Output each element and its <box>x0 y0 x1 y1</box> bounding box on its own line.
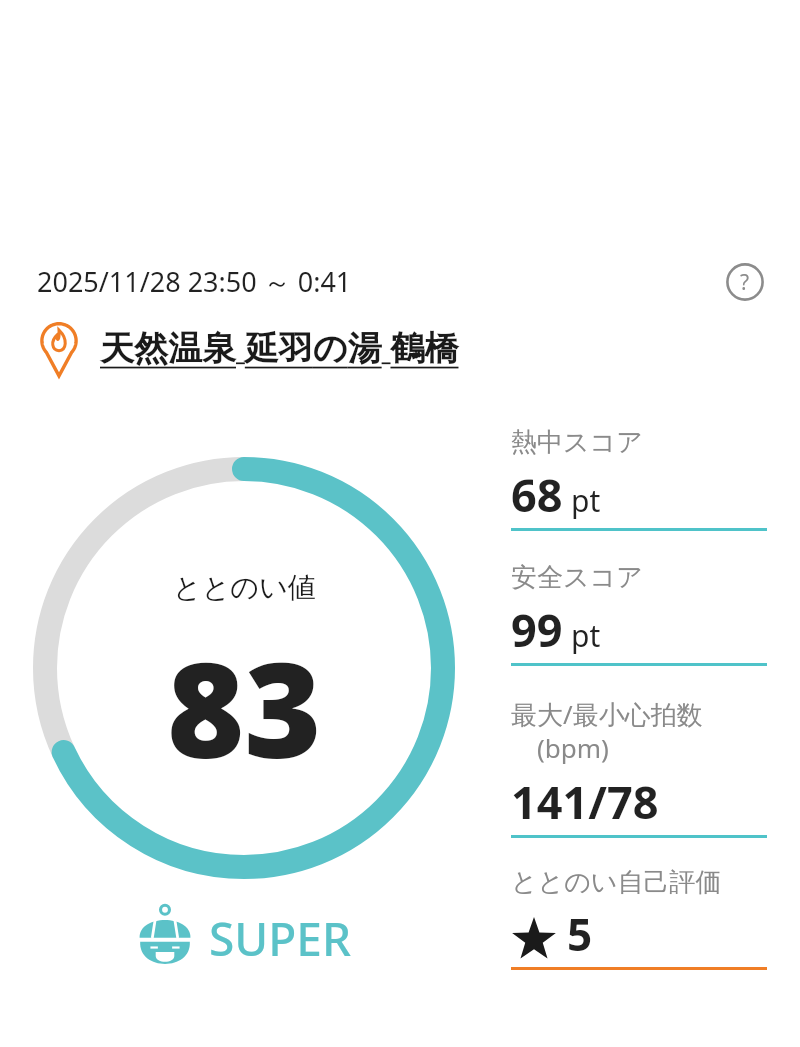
staticText: pt <box>571 615 601 656</box>
staticText: 熱中スコア <box>511 426 643 459</box>
button[interactable]: ととのい自己評価 <box>511 866 767 970</box>
button[interactable]: Help <box>724 261 766 303</box>
staticText: ? <box>740 268 750 297</box>
button[interactable]: 熱中スコア <box>511 426 767 531</box>
staticText: 最大/最小心拍数 (bpm) <box>511 696 703 766</box>
button[interactable]: 最大/最小心拍数 (bpm) <box>511 696 767 838</box>
staticText: 99 <box>511 599 563 660</box>
staticText: 83 <box>167 617 322 797</box>
button[interactable]: SUPER <box>134 904 352 972</box>
staticText: 安全スコア <box>511 561 643 594</box>
staticText: 5 <box>567 904 593 964</box>
staticText: pt <box>571 480 601 521</box>
button[interactable]: 天然温泉 延羽の湯 鶴橋 <box>30 316 459 378</box>
staticText: 141/78 <box>511 771 659 832</box>
staticText: 68 <box>511 464 563 525</box>
staticText: 天然温泉 延羽の湯 鶴橋 <box>100 324 459 370</box>
staticText: ととのい値 <box>173 570 316 605</box>
button[interactable]: 安全スコア <box>511 561 767 666</box>
staticText: SUPER <box>209 907 352 970</box>
staticText: ととのい自己評価 <box>511 866 722 899</box>
staticText: 2025/11/28 23:50 ～ 0:41 <box>37 263 352 300</box>
